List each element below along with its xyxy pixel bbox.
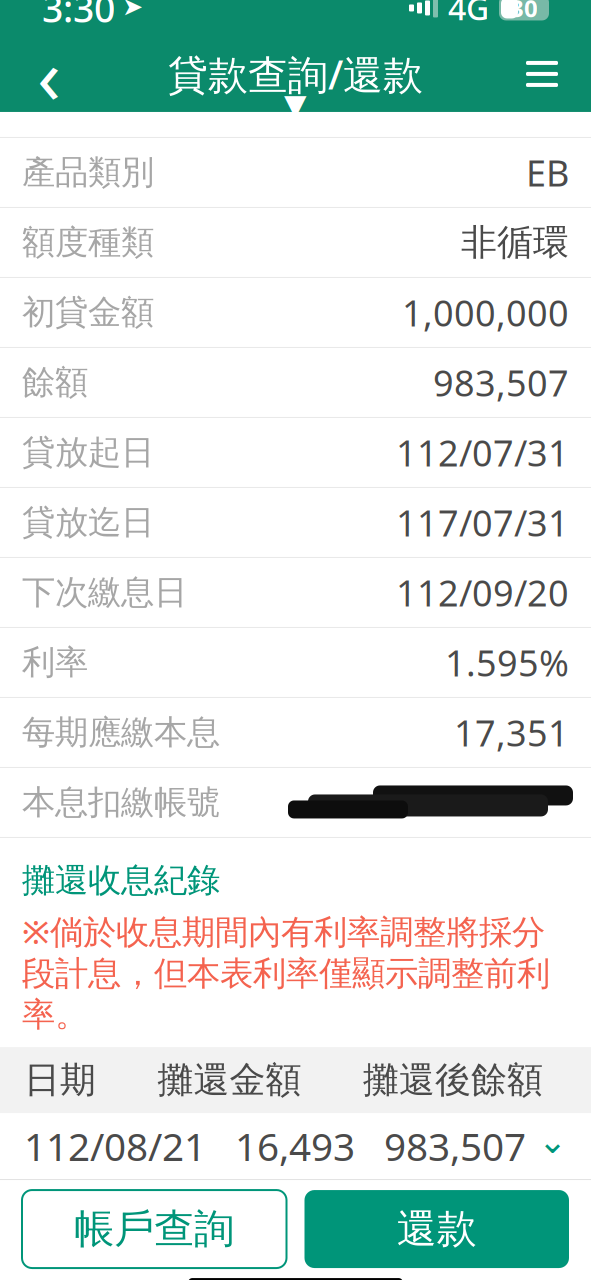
staticText: 1.595% <box>445 639 569 686</box>
staticText: 利率 <box>22 642 88 683</box>
button[interactable]: 112/08/21 <box>0 1113 591 1179</box>
staticText: 貸放迄日 <box>22 502 154 543</box>
button[interactable]: 攤還收息紀錄 <box>22 860 220 901</box>
staticText: 983,507 <box>384 1120 526 1172</box>
button[interactable]: 還款 <box>304 1190 569 1268</box>
staticText: 每期應繳本息 <box>22 712 220 753</box>
staticText: 112/07/31 <box>396 429 569 476</box>
staticText: 17,351 <box>454 709 569 756</box>
staticText: 4G <box>448 0 489 29</box>
staticText: ⌄ <box>538 1121 567 1161</box>
staticText: 還款 <box>397 1204 477 1254</box>
button[interactable]: Back <box>14 41 84 107</box>
staticText: 1,000,000 <box>402 289 569 336</box>
staticText: 初貸金額 <box>22 292 154 333</box>
staticText: 16,493 <box>235 1120 355 1172</box>
staticText: 30 <box>510 0 538 24</box>
staticText: 攤還後餘額 <box>363 1058 543 1102</box>
staticText: 112/09/20 <box>396 569 569 616</box>
staticText: 貸款查詢/還款 <box>168 47 423 100</box>
staticText: 下次繳息日 <box>22 572 187 613</box>
staticText: ➤ <box>122 0 143 21</box>
staticText: 日期 <box>24 1058 96 1102</box>
staticText: 112/08/21 <box>24 1120 206 1172</box>
staticText: 117/07/31 <box>396 499 569 546</box>
staticText: ‹ <box>37 23 61 125</box>
staticText: 額度種類 <box>22 222 154 263</box>
staticText: ※倘於收息期間內有利率調整將採分段計息，但本表利率僅顯示調整前利率。 <box>22 909 550 1035</box>
button[interactable]: Menu <box>507 41 577 107</box>
staticText: EB <box>526 149 569 196</box>
staticText: 產品類別 <box>22 152 154 193</box>
staticText: 帳戶查詢 <box>74 1204 234 1254</box>
staticText: 餘額 <box>22 362 88 403</box>
staticText: 攤還金額 <box>157 1058 301 1102</box>
staticText: 攤還收息紀錄 <box>22 860 220 901</box>
staticText: 本息扣繳帳號 <box>22 782 220 823</box>
staticText: 貸放起日 <box>22 432 154 473</box>
staticText: 983,507 <box>433 359 569 406</box>
button[interactable]: 帳戶查詢 <box>22 1190 286 1268</box>
staticText: ▼ <box>284 88 307 122</box>
staticText: 3:30 <box>42 0 115 33</box>
staticText: 非循環 <box>461 220 569 264</box>
